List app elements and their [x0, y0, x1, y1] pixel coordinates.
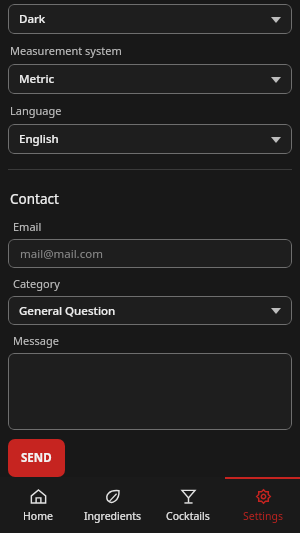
staticText: Cocktails [166, 509, 210, 523]
staticText: Category [13, 276, 60, 291]
button[interactable]: Dark [8, 4, 292, 34]
staticText: Metric [19, 71, 55, 87]
button[interactable]: Cocktails [150, 477, 225, 533]
staticText: Contact [10, 190, 59, 208]
staticText: SEND [21, 450, 52, 466]
staticText: Dark [19, 11, 46, 27]
button[interactable] [8, 353, 292, 430]
button[interactable]: Metric [8, 64, 292, 94]
button[interactable]: Home [0, 477, 75, 533]
staticText: Email [13, 219, 42, 234]
staticText: mail@mail.com [20, 246, 103, 262]
button[interactable]: SEND [8, 439, 65, 477]
button[interactable]: English [8, 124, 292, 154]
button[interactable]: General Question [8, 296, 292, 325]
staticText: Settings [243, 509, 283, 523]
staticText: English [19, 131, 59, 147]
button[interactable]: Ingredients [75, 477, 150, 533]
staticText: Language [10, 103, 62, 118]
staticText: Ingredients [84, 509, 141, 523]
staticText: Message [13, 333, 59, 348]
staticText: Home [23, 509, 53, 523]
button[interactable]: Settings [225, 477, 300, 533]
button[interactable]: mail@mail.com [8, 239, 292, 268]
staticText: Measurement system [10, 43, 122, 58]
staticText: General Question [19, 303, 116, 319]
